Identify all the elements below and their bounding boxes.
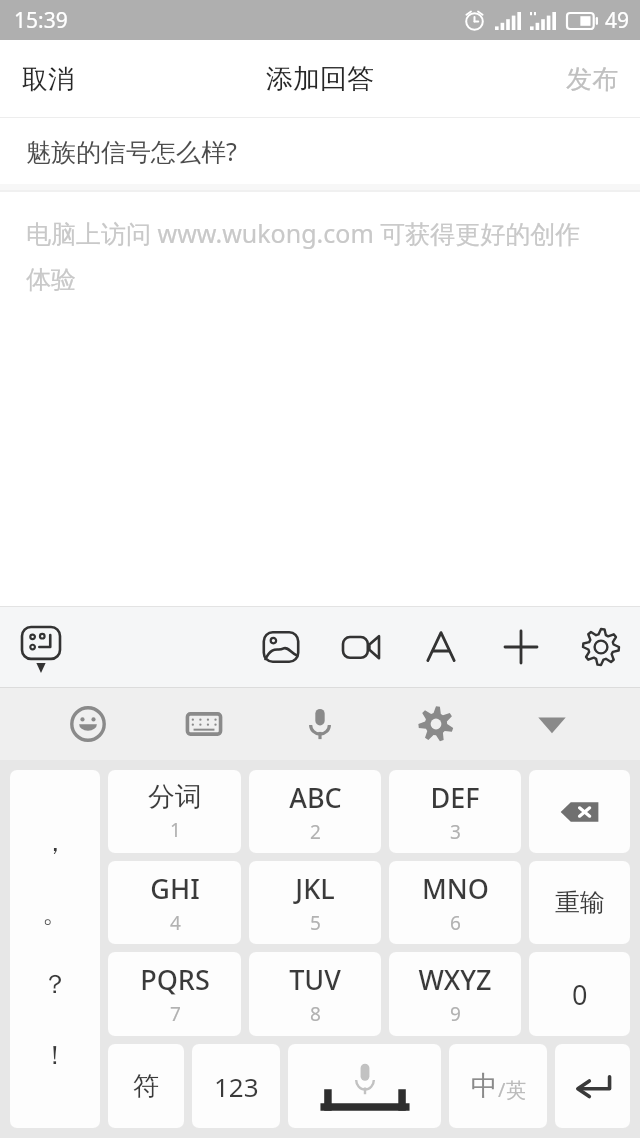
button[interactable]: Emoji	[60, 696, 116, 752]
button[interactable]: TUV	[249, 952, 381, 1036]
staticText: 0	[572, 976, 588, 1013]
staticText: ！	[42, 1039, 68, 1072]
button[interactable]: 分词	[108, 770, 241, 853]
button[interactable]: 取消	[0, 47, 96, 112]
button[interactable]: Hide keyboard	[524, 696, 580, 752]
staticText: ABC	[289, 779, 342, 816]
button[interactable]: 0	[529, 952, 630, 1036]
staticText: 15:39	[14, 6, 68, 35]
button[interactable]: ABC	[249, 770, 381, 853]
staticText: 4	[170, 910, 181, 936]
button[interactable]: Voice input	[292, 696, 348, 752]
staticText: 2	[310, 819, 321, 845]
button[interactable]: ，	[10, 770, 100, 1128]
button[interactable]: Emoticon panel	[12, 618, 70, 676]
button[interactable]: 发布	[544, 47, 640, 112]
staticText: /	[498, 1076, 506, 1103]
staticText: 取消	[22, 63, 74, 96]
button[interactable]: PQRS	[108, 952, 241, 1036]
staticText: 重输	[555, 887, 605, 918]
staticText: 电脑上访问 www.wukong.com 可获得更好的创作体验	[26, 216, 596, 296]
button[interactable]: Text format	[416, 622, 466, 672]
button[interactable]: Backspace	[529, 770, 630, 853]
button[interactable]: Insert video	[336, 622, 386, 672]
button[interactable]: 中	[449, 1044, 547, 1128]
button[interactable]: JKL	[249, 861, 381, 944]
button[interactable]: Keyboard layout	[176, 696, 232, 752]
button[interactable]: Insert image	[256, 622, 306, 672]
button[interactable]: DEF	[389, 770, 521, 853]
staticText: 添加回答	[266, 62, 374, 96]
button[interactable]: 重输	[529, 861, 630, 944]
staticText: 3	[450, 819, 461, 845]
staticText: 发布	[566, 63, 618, 96]
staticText: WXYZ	[418, 961, 492, 998]
staticText: 9	[450, 1001, 461, 1027]
staticText: ，	[42, 826, 68, 859]
staticText: 49	[605, 6, 630, 35]
staticText: 6	[450, 910, 461, 936]
staticText: JKL	[295, 870, 335, 907]
staticText: 123	[214, 1069, 259, 1104]
staticText: 英	[506, 1078, 526, 1103]
staticText: 。	[42, 897, 68, 930]
staticText: PQRS	[140, 961, 210, 998]
button[interactable]: GHI	[108, 861, 241, 944]
staticText: 5	[310, 910, 321, 936]
staticText: 魅族的信号怎么样?	[26, 134, 237, 168]
staticText: MNO	[422, 870, 489, 907]
button[interactable]: Settings	[576, 622, 626, 672]
staticText: 中	[471, 1069, 498, 1103]
button[interactable]: MNO	[389, 861, 521, 944]
staticText: 7	[170, 1001, 181, 1027]
button[interactable]: Add	[496, 622, 546, 672]
button[interactable]: Input settings	[408, 696, 464, 752]
button[interactable]: WXYZ	[389, 952, 521, 1036]
button[interactable]: 123	[192, 1044, 280, 1128]
staticText: TUV	[289, 961, 341, 998]
staticText: 符	[133, 1070, 159, 1103]
staticText: GHI	[150, 870, 200, 907]
staticText: ？	[42, 968, 68, 1001]
button[interactable]: Enter	[555, 1044, 630, 1128]
staticText: 8	[310, 1001, 321, 1027]
staticText: 1	[170, 817, 181, 843]
staticText: DEF	[430, 779, 480, 816]
button[interactable]: Space	[288, 1044, 441, 1128]
button[interactable]: 符	[108, 1044, 184, 1128]
staticText: 分词	[148, 780, 202, 814]
